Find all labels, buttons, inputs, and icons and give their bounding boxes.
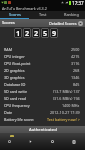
staticText: Authenticated <box>29 127 57 133</box>
button[interactable]: Scores <box>0 11 29 19</box>
staticText: Detailed Scores <box>49 21 77 26</box>
staticText: Test battery now! > <box>47 117 80 122</box>
button[interactable]: CPU frequency <box>0 102 85 109</box>
staticText: Date <box>4 110 13 115</box>
button[interactable]: CPU float-point <box>0 60 85 67</box>
button[interactable]: Home <box>27 138 34 145</box>
staticText: 17:37 <box>72 0 84 5</box>
button[interactable]: Recents <box>49 138 56 145</box>
button[interactable]: SD card write <box>0 88 85 95</box>
staticText: 3D graphics <box>4 75 25 80</box>
button[interactable]: SD card read <box>0 95 85 102</box>
button[interactable]: CPU integer <box>0 53 85 60</box>
staticText: 268 <box>73 68 80 73</box>
button[interactable]: 2D graphics <box>0 67 85 74</box>
staticText: 845 <box>73 82 80 87</box>
button[interactable]: Date <box>0 109 85 116</box>
staticText: SD card write <box>4 89 27 94</box>
staticText: 2 <box>25 28 30 38</box>
staticText: 2 <box>34 28 39 38</box>
button[interactable]: Switch score view <box>78 21 83 26</box>
button[interactable]: Authenticated <box>0 126 85 133</box>
staticText: CPU integer <box>4 54 25 59</box>
staticText: Scores <box>2 20 15 26</box>
staticText: RAM <box>4 47 12 52</box>
button[interactable]: Test <box>29 11 57 19</box>
button[interactable]: Back <box>6 138 13 145</box>
staticText: SD card read <box>4 96 27 101</box>
staticText: 1346 <box>71 75 80 80</box>
staticText: 2D graphics <box>4 68 25 73</box>
staticText: Scores <box>9 12 21 17</box>
staticText: (13.7 MB/s) 137 <box>53 89 80 94</box>
staticText: 3116 <box>71 61 80 66</box>
button[interactable]: Ranking <box>57 11 85 19</box>
staticText: AnTuTu Benchmark v3.3.2 <box>2 6 47 11</box>
button[interactable]: Battery life score: <box>0 116 85 123</box>
staticText: CPU float-point <box>4 61 31 66</box>
staticText: 9 <box>52 28 57 38</box>
button[interactable]: 3D graphics <box>0 74 85 81</box>
button[interactable]: Menu <box>70 138 77 145</box>
staticText: 1 <box>16 28 21 38</box>
staticText: Ranking <box>64 12 79 17</box>
staticText: 5 <box>43 28 48 38</box>
staticText: Battery life score: <box>4 117 35 122</box>
staticText: 1400 MHz <box>62 103 80 108</box>
staticText: (31.6 MB/s) 194 <box>53 96 80 101</box>
button[interactable]: RAM <box>0 46 85 53</box>
button[interactable]: Database IO <box>0 81 85 88</box>
staticText: 4215 <box>71 54 80 59</box>
staticText: Test <box>39 12 47 17</box>
staticText: 2500 <box>71 47 80 52</box>
staticText: 2012-10-27 17:39 <box>50 110 80 115</box>
staticText: CPU frequency <box>4 103 30 108</box>
staticText: Database IO <box>4 82 26 87</box>
